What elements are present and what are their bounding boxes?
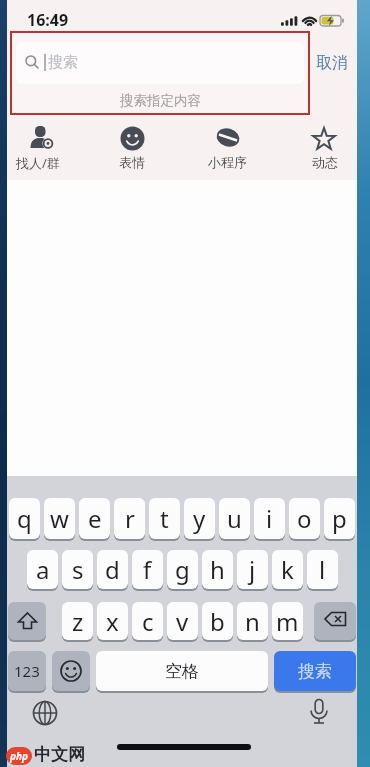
button[interactable]: a	[27, 550, 58, 589]
staticText: e	[88, 502, 102, 535]
button[interactable]: n	[237, 602, 268, 640]
staticText: w	[50, 502, 69, 535]
button[interactable]	[120, 126, 145, 151]
staticText: 搜索	[298, 661, 332, 682]
staticText: 123	[14, 661, 40, 681]
staticText: i	[266, 502, 273, 535]
button[interactable]: e	[79, 498, 110, 539]
button[interactable]: b	[202, 602, 233, 640]
staticText: u	[227, 502, 242, 535]
staticText: z	[72, 605, 84, 638]
button[interactable]: t	[149, 498, 180, 539]
button[interactable]: q	[9, 498, 40, 539]
button[interactable]: 取消	[316, 53, 348, 73]
button[interactable]: 搜索	[274, 651, 356, 691]
button[interactable]: 空格	[96, 651, 268, 691]
staticText: p	[332, 502, 347, 535]
button[interactable]: i	[254, 498, 285, 539]
staticText: php	[10, 749, 28, 763]
staticText: 16:49	[27, 9, 69, 31]
button[interactable]	[32, 700, 58, 726]
button[interactable]: o	[289, 498, 320, 539]
staticText: 表情	[119, 154, 145, 170]
staticText: g	[175, 553, 190, 586]
staticText: 动态	[312, 154, 338, 170]
staticText: m	[276, 605, 299, 638]
staticText: d	[105, 553, 120, 586]
button[interactable]	[8, 602, 46, 640]
button[interactable]: z	[62, 602, 93, 640]
staticText: k	[281, 553, 294, 586]
staticText: f	[143, 553, 152, 586]
button[interactable]	[29, 126, 53, 150]
button[interactable]: f	[132, 550, 163, 589]
button[interactable]	[307, 698, 331, 729]
button[interactable]: p	[324, 498, 355, 539]
button[interactable]: g	[167, 550, 198, 589]
button[interactable]: m	[272, 602, 303, 640]
staticText: t	[160, 502, 169, 535]
staticText: o	[297, 502, 312, 535]
staticText: r	[125, 502, 135, 535]
button[interactable]	[16, 42, 304, 84]
staticText: 小程序	[208, 154, 247, 170]
button[interactable]: y	[184, 498, 215, 539]
staticText: x	[106, 605, 119, 638]
button[interactable]: v	[167, 602, 198, 640]
staticText: v	[176, 605, 189, 638]
button[interactable]: u	[219, 498, 250, 539]
staticText: q	[17, 502, 32, 535]
button[interactable]: w	[44, 498, 75, 539]
button[interactable]	[312, 127, 336, 151]
button[interactable]: j	[237, 550, 268, 589]
button[interactable]: r	[114, 498, 145, 539]
staticText: 搜索	[48, 53, 78, 72]
button[interactable]: x	[97, 602, 128, 640]
staticText: c	[142, 605, 154, 638]
button[interactable]: 123	[8, 651, 46, 691]
button[interactable]	[216, 127, 240, 148]
button[interactable]	[314, 602, 356, 640]
staticText: 中文网	[34, 744, 85, 765]
staticText: 搜索指定内容	[120, 92, 201, 109]
staticText: b	[210, 605, 225, 638]
staticText: l	[319, 553, 326, 586]
button[interactable]: c	[132, 602, 163, 640]
staticText: h	[210, 553, 225, 586]
staticText: 空格	[165, 661, 199, 682]
button[interactable]: d	[97, 550, 128, 589]
staticText: n	[245, 605, 260, 638]
button[interactable]: l	[307, 550, 338, 589]
staticText: a	[36, 553, 50, 586]
button[interactable]: s	[62, 550, 93, 589]
staticText: 找人/群	[16, 154, 60, 172]
staticText: s	[72, 553, 84, 586]
button[interactable]: k	[272, 550, 303, 589]
button[interactable]: h	[202, 550, 233, 589]
staticText: y	[193, 502, 206, 535]
staticText: j	[249, 553, 256, 586]
staticText: 取消	[316, 53, 348, 73]
button[interactable]	[52, 651, 90, 691]
